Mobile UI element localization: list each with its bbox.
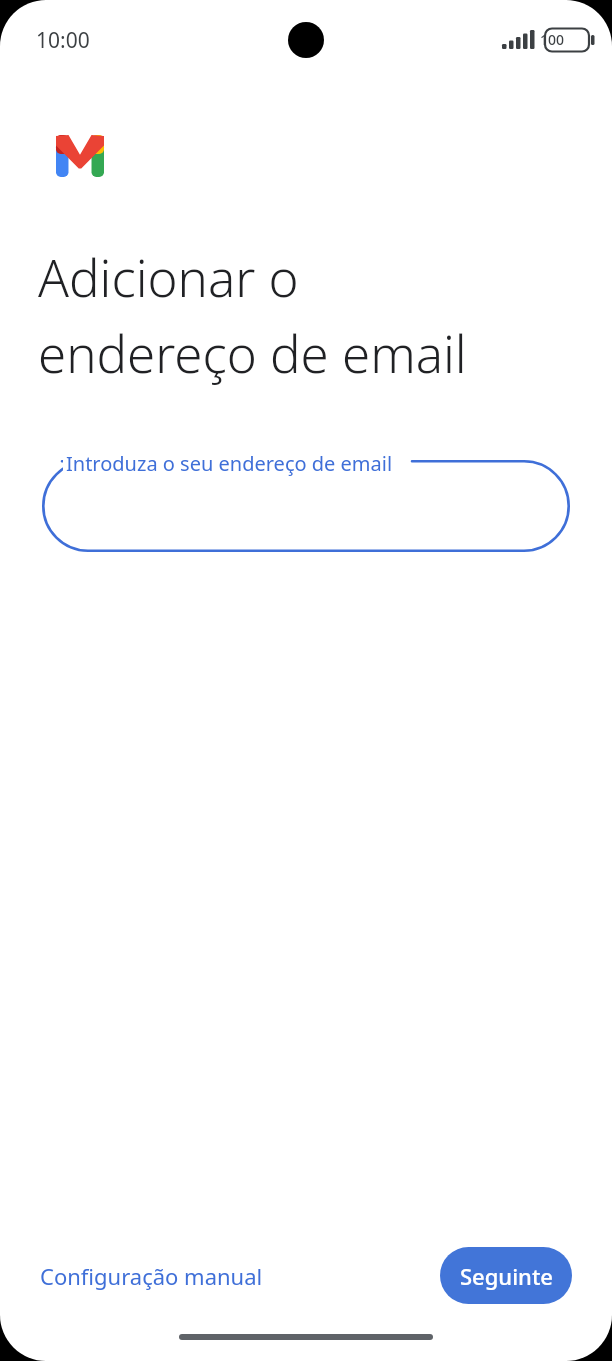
staticText: Introduza o seu endereço de email xyxy=(66,450,393,477)
staticText: Adicionar o endereço de email xyxy=(38,242,583,388)
button[interactable]: Introduza o seu endereço de email xyxy=(42,460,570,552)
staticText: 100 xyxy=(540,30,565,49)
other: Home gesture bar xyxy=(179,1334,433,1340)
button[interactable]: Configuração manual xyxy=(26,1252,277,1300)
staticText: Configuração manual xyxy=(40,1261,263,1291)
button[interactable]: Seguinte xyxy=(440,1247,572,1304)
staticText: Seguinte xyxy=(460,1261,553,1291)
staticText: 10:00 xyxy=(36,26,90,55)
